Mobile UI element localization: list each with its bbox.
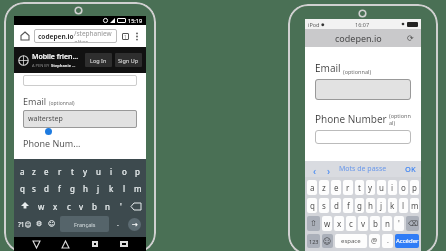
staticText: w	[38, 201, 45, 212]
button[interactable]: n	[382, 216, 392, 231]
button[interactable]: Back	[29, 237, 43, 251]
button[interactable]: '	[394, 216, 404, 231]
button[interactable]: Settings	[33, 216, 45, 232]
button[interactable]: ?1☺	[16, 216, 33, 232]
button[interactable]: Emoji	[322, 234, 333, 248]
button[interactable]: Shift	[16, 199, 34, 213]
button[interactable]: x	[48, 199, 62, 213]
staticText: Email	[315, 61, 341, 75]
button[interactable]: Mots de passe	[339, 164, 387, 174]
button[interactable]: q	[16, 181, 28, 195]
button[interactable]: t	[355, 180, 364, 195]
button[interactable]: Recent apps	[88, 237, 102, 251]
staticText: y	[83, 166, 88, 177]
button[interactable]: s	[319, 198, 329, 213]
button[interactable]: Previous field	[310, 164, 320, 174]
button[interactable]: o	[118, 164, 131, 178]
button[interactable]: a	[307, 180, 317, 195]
staticText: e	[334, 182, 339, 193]
button[interactable]: a	[16, 164, 28, 178]
button[interactable]: h	[79, 181, 92, 195]
staticText: Français	[74, 221, 96, 228]
button[interactable]: d	[331, 198, 341, 213]
staticText: codepen.io	[335, 32, 382, 44]
button[interactable]: e	[331, 180, 341, 195]
button[interactable]: OK	[405, 164, 416, 174]
button[interactable]: t	[66, 164, 79, 178]
button[interactable]: Emoji	[45, 216, 58, 232]
button[interactable]: More options	[132, 31, 142, 41]
button[interactable]: r	[53, 164, 66, 178]
button[interactable]: z	[28, 164, 40, 178]
button[interactable]: c	[62, 199, 75, 213]
button[interactable]: z	[319, 180, 329, 195]
button[interactable]: walterstep	[23, 110, 137, 128]
button[interactable]: Accéder	[395, 234, 419, 248]
button[interactable]: m	[410, 198, 419, 213]
button[interactable]: '	[114, 199, 127, 213]
staticText: t	[71, 166, 74, 177]
staticText: k	[109, 183, 114, 194]
button[interactable]: .	[111, 216, 124, 232]
staticText: Mobile frien...	[32, 52, 79, 62]
button[interactable]: o	[399, 180, 408, 195]
button[interactable]: f	[343, 198, 353, 213]
button[interactable]: g	[355, 198, 364, 213]
button[interactable]: Enter	[124, 216, 144, 232]
button[interactable]: j	[377, 198, 386, 213]
button[interactable]: i	[388, 180, 397, 195]
button[interactable]	[315, 79, 411, 100]
button[interactable]: Home	[18, 29, 32, 43]
button[interactable]: r	[343, 180, 353, 195]
staticText: b	[92, 201, 97, 212]
button[interactable]: l	[118, 181, 131, 195]
button[interactable]: y	[79, 164, 92, 178]
button[interactable]: Sign Up	[115, 53, 142, 67]
other: Reload	[406, 34, 415, 43]
button[interactable]: p	[410, 180, 419, 195]
button[interactable]: k	[388, 198, 397, 213]
button[interactable]: Home	[58, 237, 72, 251]
button[interactable]: w	[322, 216, 332, 231]
button[interactable]: Hide keyboard	[117, 237, 131, 251]
button[interactable]: Backspace	[406, 216, 419, 231]
button[interactable]: .	[382, 234, 393, 248]
button[interactable]: c	[346, 216, 356, 231]
button[interactable]: Tabs	[120, 31, 130, 41]
button[interactable]: g	[66, 181, 79, 195]
button[interactable]: f	[53, 181, 66, 195]
button[interactable]: h	[366, 198, 375, 213]
button[interactable]: @	[369, 234, 380, 248]
button[interactable]: 123	[307, 234, 320, 248]
button[interactable]: p	[131, 164, 144, 178]
button[interactable]: v	[75, 199, 88, 213]
button[interactable]: espace	[335, 234, 367, 248]
button[interactable]: v	[358, 216, 368, 231]
button[interactable]: u	[377, 180, 386, 195]
button[interactable]: u	[92, 164, 105, 178]
button[interactable]: e	[40, 164, 53, 178]
button[interactable]: m	[131, 181, 144, 195]
button[interactable]: Français	[60, 216, 109, 232]
button[interactable]: x	[334, 216, 344, 231]
button[interactable]: codepen.io	[311, 29, 415, 47]
button[interactable]: k	[105, 181, 118, 195]
button[interactable]	[315, 130, 411, 144]
button[interactable]: Backspace	[127, 199, 144, 213]
button[interactable]: Log In	[85, 53, 112, 67]
button[interactable]: b	[88, 199, 101, 213]
button[interactable]: i	[105, 164, 118, 178]
button[interactable]: y	[366, 180, 375, 195]
button[interactable]: j	[92, 181, 105, 195]
staticText: h	[83, 183, 88, 194]
button[interactable]: n	[101, 199, 114, 213]
button[interactable]: q	[307, 198, 317, 213]
button[interactable]: Next field	[324, 164, 334, 174]
button[interactable]: l	[399, 198, 408, 213]
button[interactable]: codepen.io	[34, 29, 117, 43]
button[interactable]: b	[370, 216, 380, 231]
button[interactable]: s	[28, 181, 40, 195]
button[interactable]: Shift	[307, 216, 320, 231]
button[interactable]: d	[40, 181, 53, 195]
button[interactable]: w	[34, 199, 48, 213]
